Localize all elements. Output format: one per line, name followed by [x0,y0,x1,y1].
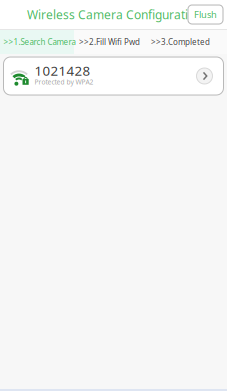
staticText: >>3.Completed [151,37,210,47]
staticText: >>1.Search Camera [3,37,75,47]
staticText: Wireless Camera Configurati [27,6,188,22]
staticText: Protected by WPA2 [34,77,93,86]
staticText: >>2.Fill Wifi Pwd [79,37,140,47]
button[interactable]: Flush [188,5,223,24]
staticText: 1021428 [34,62,90,79]
button[interactable]: 1021428 [3,57,223,95]
staticText: Flush [194,8,217,21]
